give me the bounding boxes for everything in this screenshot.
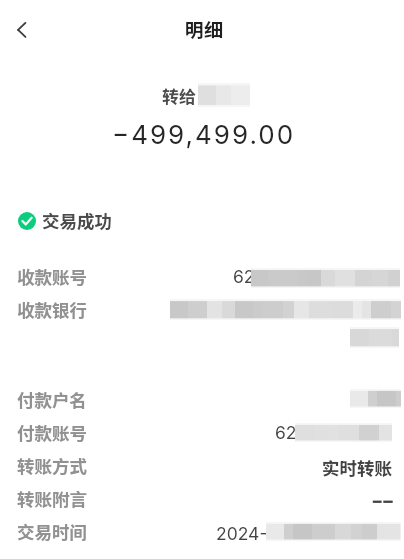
staticText: 付款账号 — [17, 420, 87, 445]
staticText: 收款账号 — [17, 264, 87, 289]
staticText: 转给 — [162, 83, 196, 108]
staticText: 交易时间 — [17, 519, 87, 544]
staticText: 交易成功 — [42, 208, 112, 233]
staticText: 付款户名 — [17, 387, 87, 412]
staticText: 2024- — [216, 523, 268, 544]
staticText: 实时转账 — [322, 455, 392, 480]
staticText: −499,499.00 — [112, 119, 296, 150]
button[interactable]: Back — [4, 12, 40, 48]
staticText: 62 — [275, 422, 297, 443]
staticText: 转账方式 — [17, 453, 87, 478]
staticText: 62 — [233, 266, 255, 287]
staticText: 明细 — [185, 15, 224, 43]
staticText: 收款银行 — [17, 297, 87, 322]
staticText: 转账附言 — [17, 486, 87, 511]
